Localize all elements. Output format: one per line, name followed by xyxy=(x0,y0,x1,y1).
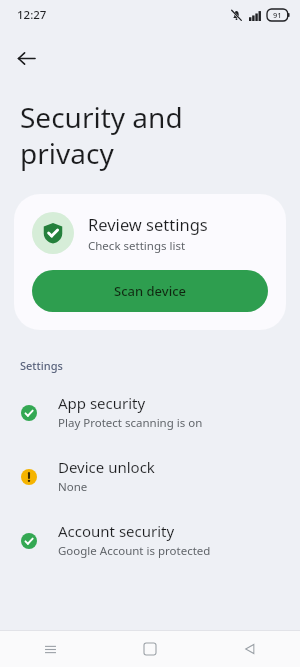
staticText: Device unlock xyxy=(58,457,155,477)
button[interactable]: App security xyxy=(0,391,300,433)
staticText: 91 xyxy=(273,10,282,20)
staticText: Security and privacy xyxy=(20,98,183,172)
button[interactable]: Recent apps xyxy=(0,631,100,667)
button[interactable]: Account security xyxy=(0,519,300,561)
staticText: None xyxy=(58,479,88,495)
staticText: 12:27 xyxy=(17,7,47,23)
button[interactable]: Back xyxy=(8,40,44,76)
button[interactable]: Device unlock xyxy=(0,455,300,497)
staticText: Google Account is protected xyxy=(58,543,211,559)
staticText: Settings xyxy=(20,358,63,373)
staticText: Scan device xyxy=(114,282,186,300)
button[interactable]: Home xyxy=(100,631,200,667)
staticText: Review settings xyxy=(88,213,208,235)
staticText: Play Protect scanning is on xyxy=(58,415,203,431)
staticText: Account security xyxy=(58,521,175,541)
staticText: App security xyxy=(58,393,146,413)
button[interactable]: Review settings xyxy=(14,194,286,330)
button[interactable]: Scan device xyxy=(32,270,268,312)
button[interactable]: Back xyxy=(200,631,300,667)
staticText: Check settings list xyxy=(88,238,186,254)
